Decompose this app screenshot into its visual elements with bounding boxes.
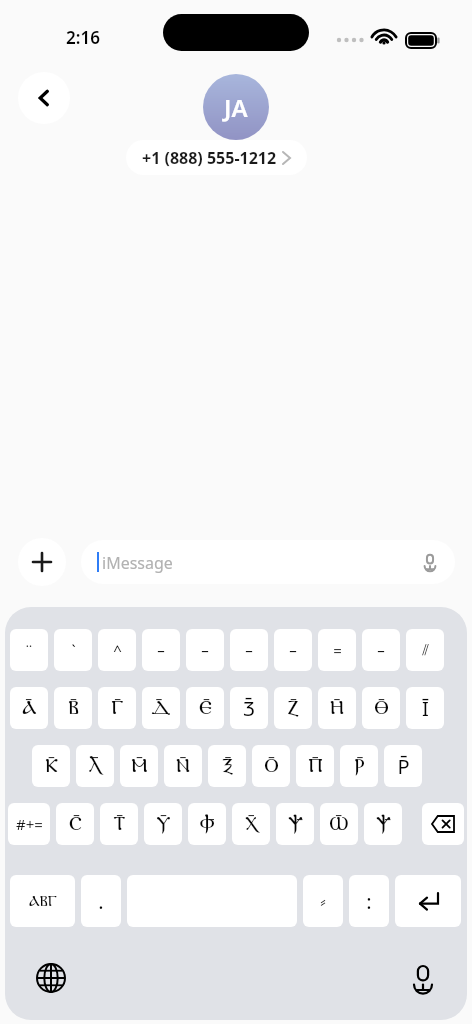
button[interactable]: Dictate	[417, 549, 443, 575]
button[interactable]: Add attachment	[18, 538, 66, 586]
staticText: .	[98, 888, 104, 915]
button[interactable]: Ⲫ̄	[188, 803, 226, 845]
staticText: =	[333, 640, 342, 660]
staticText: Ⲥ̄	[69, 814, 82, 834]
staticText: Ⲡ̄	[308, 756, 323, 776]
button[interactable]: –	[274, 629, 312, 671]
staticText: –	[289, 640, 297, 660]
button[interactable]: ⲀⲂⲄ	[10, 875, 75, 927]
button[interactable]: Ⳅ̄	[230, 687, 268, 729]
button[interactable]: Ⲍ̄	[274, 687, 312, 729]
button[interactable]: .	[81, 875, 121, 927]
staticText: Ⲍ̄	[287, 698, 299, 718]
staticText: Ⲉ̄	[199, 698, 212, 718]
staticText: Ⲁ̄	[22, 698, 37, 718]
button[interactable]: Ⲡ̄	[296, 745, 334, 787]
staticText: +1 (888) 555-1212	[142, 147, 277, 169]
staticText: Ⲏ̄	[330, 698, 344, 718]
staticText: iMessage	[102, 552, 173, 574]
button[interactable]: Ⲯ̄	[364, 803, 402, 845]
button[interactable]: Ⲇ̄	[142, 687, 180, 729]
button[interactable]: `	[54, 629, 92, 671]
button[interactable]: Ⲥ̄	[56, 803, 94, 845]
staticText: Ⲅ̄	[111, 698, 124, 718]
staticText: Ⲙ̄	[131, 756, 148, 776]
button[interactable]: Ⲕ̄	[32, 745, 70, 787]
staticText: Ⲝ̄	[222, 756, 233, 776]
staticText: Ⲭ̄	[245, 814, 258, 834]
button[interactable]: ⸗	[303, 875, 343, 927]
staticText: #+=	[16, 814, 43, 834]
staticText: –	[157, 640, 165, 660]
button[interactable]: :	[349, 875, 389, 927]
button[interactable]: –	[230, 629, 268, 671]
button[interactable]: Dictation	[402, 957, 444, 999]
button[interactable]: +1 (888) 555-1212	[142, 140, 291, 175]
staticText: Ⲑ̄	[374, 698, 389, 718]
staticText: Ⲗ̄	[88, 756, 102, 776]
staticText: JA	[224, 91, 248, 124]
button[interactable]: Ⲧ̄	[100, 803, 138, 845]
button[interactable]: Ⲏ̄	[318, 687, 356, 729]
button[interactable]: JA	[203, 74, 269, 140]
staticText: Ⲩ̄	[156, 814, 171, 834]
button[interactable]: Ⲟ̄	[252, 745, 290, 787]
staticText: Ⲣ̄	[354, 756, 365, 776]
button[interactable]: Ⲁ̄	[10, 687, 48, 729]
staticText: ⫽	[422, 643, 429, 658]
button[interactable]: Ī	[406, 687, 444, 729]
staticText: Ⳅ̄	[243, 695, 255, 722]
staticText: Ⲕ̄	[45, 756, 58, 776]
staticText: 2:16	[66, 26, 100, 49]
staticText: Ⲟ̄	[264, 756, 279, 776]
button[interactable]: Ⲣ̄	[340, 745, 378, 787]
staticText: P̄	[397, 753, 410, 780]
staticText: –	[245, 640, 253, 660]
staticText: `	[71, 640, 76, 660]
button[interactable]: Back	[18, 72, 70, 124]
staticText: ⸗	[320, 891, 326, 911]
staticText: Ⲯ̄	[288, 814, 303, 834]
button[interactable]: Ⲯ̄	[276, 803, 314, 845]
staticText: ⲀⲂⲄ	[29, 894, 57, 909]
button[interactable]: Ⲛ̄	[164, 745, 202, 787]
staticText: :	[366, 888, 372, 915]
button[interactable]: Ⲱ̄	[320, 803, 358, 845]
button[interactable]: Ⲃ̄	[54, 687, 92, 729]
button[interactable]: ¨	[10, 629, 48, 671]
button[interactable]: iMessage	[81, 540, 455, 584]
button[interactable]: Ⲝ̄	[208, 745, 246, 787]
button[interactable]: Ⲙ̄	[120, 745, 158, 787]
button[interactable]: –	[362, 629, 400, 671]
button[interactable]: Ⲑ̄	[362, 687, 400, 729]
button[interactable]: –	[186, 629, 224, 671]
staticText: Ⲯ̄	[376, 814, 391, 834]
staticText: Ī	[422, 695, 429, 722]
button[interactable]: P̄	[384, 745, 422, 787]
staticText: Ⲧ̄	[113, 814, 126, 834]
button[interactable]: Ⲉ̄	[186, 687, 224, 729]
staticText: Ⲫ̄	[199, 814, 215, 834]
button[interactable]: ⫽	[406, 629, 444, 671]
button[interactable]: Return	[395, 875, 461, 927]
staticText: Ⲱ̄	[329, 814, 349, 834]
button[interactable]: ^	[98, 629, 136, 671]
button[interactable]: Backspace	[422, 803, 464, 845]
button[interactable]: Ⲩ̄	[144, 803, 182, 845]
button[interactable]: Ⲗ̄	[76, 745, 114, 787]
button[interactable]: #+=	[8, 803, 50, 845]
staticText: Ⲃ̄	[68, 698, 79, 718]
staticText: ¨	[24, 639, 34, 662]
button[interactable]: Ⲭ̄	[232, 803, 270, 845]
staticText: –	[377, 640, 385, 660]
staticText: ^	[113, 640, 122, 660]
button[interactable]: –	[142, 629, 180, 671]
staticText: –	[201, 640, 209, 660]
button[interactable]: Ⲅ̄	[98, 687, 136, 729]
staticText: Ⲇ̄	[151, 698, 171, 718]
button[interactable]: Change keyboard	[30, 957, 72, 999]
button[interactable]: =	[318, 629, 356, 671]
staticText: Ⲛ̄	[176, 756, 190, 776]
